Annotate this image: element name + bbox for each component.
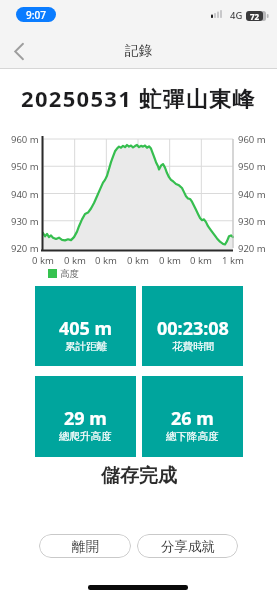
staticText: 405 m	[59, 316, 113, 338]
staticText: 累計距離	[65, 340, 107, 353]
staticText: 總爬升高度	[59, 430, 112, 443]
staticText: 950 m	[11, 160, 39, 172]
staticText: 950 m	[238, 160, 266, 172]
staticText: 960 m	[238, 133, 266, 145]
staticText: 940 m	[11, 188, 39, 200]
staticText: 9:07	[26, 8, 46, 22]
staticText: 0 km	[64, 254, 86, 266]
staticText: 記錄	[125, 42, 152, 59]
staticText: 0 km	[32, 254, 54, 266]
staticText: 920 m	[11, 242, 39, 254]
staticText: 儲存完成	[101, 464, 177, 488]
staticText: 0 km	[190, 254, 212, 266]
staticText: 29 m	[64, 406, 107, 428]
staticText: 高度	[60, 268, 79, 280]
staticText: 4G	[230, 9, 243, 22]
button[interactable]: 00:23:08	[142, 286, 243, 366]
staticText: 920 m	[238, 242, 266, 254]
staticText: 總下降高度	[166, 430, 219, 443]
staticText: 0 km	[95, 254, 117, 266]
staticText: 930 m	[11, 215, 39, 227]
staticText: 0 km	[159, 254, 181, 266]
staticText: 0 km	[127, 254, 149, 266]
staticText: 930 m	[238, 215, 266, 227]
staticText: 花費時間	[172, 340, 214, 353]
button[interactable]: 離開	[39, 534, 131, 558]
staticText: 離開	[72, 538, 99, 555]
staticText: 分享成就	[161, 538, 215, 555]
button[interactable]: 分享成就	[137, 534, 238, 558]
button[interactable]: 29 m	[35, 376, 136, 457]
button[interactable]: 405 m	[35, 286, 136, 366]
button[interactable]	[6, 38, 32, 64]
staticText: 1 km	[222, 254, 244, 266]
staticText: 940 m	[238, 188, 266, 200]
staticText: 00:23:08	[157, 316, 229, 338]
button[interactable]: 26 m	[142, 376, 243, 457]
staticText: 20250531 虻彈山東峰	[21, 83, 256, 109]
staticText: 26 m	[171, 406, 214, 428]
staticText: 960 m	[11, 133, 39, 145]
staticText: 72	[250, 11, 260, 21]
